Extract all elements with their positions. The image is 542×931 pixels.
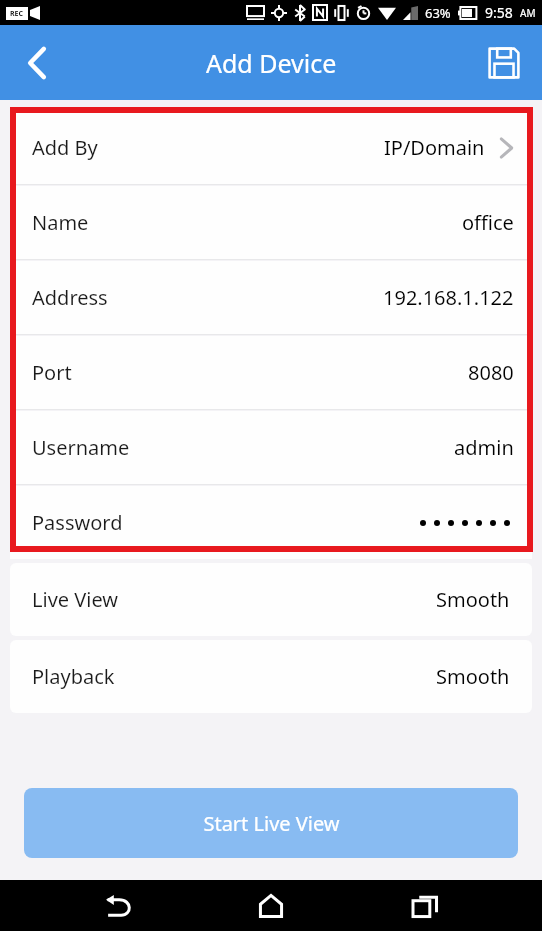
staticText: 192.168.1.122: [383, 284, 514, 311]
staticText: Address: [32, 284, 108, 311]
button[interactable]: Home: [235, 880, 307, 931]
staticText: 8080: [468, 359, 514, 386]
staticText: Name: [32, 209, 89, 236]
staticText: 63%: [425, 4, 451, 22]
staticText: Password: [32, 509, 123, 536]
staticText: admin: [454, 434, 514, 461]
button[interactable]: Add By: [10, 111, 532, 184]
button[interactable]: Username: [10, 411, 532, 484]
staticText: Live View: [32, 586, 119, 613]
staticText: Port: [32, 359, 72, 386]
staticText: Start Live View: [203, 810, 340, 837]
staticText: Smooth: [436, 663, 510, 690]
button[interactable]: Playback: [10, 640, 532, 713]
button[interactable]: Port: [10, 336, 532, 409]
staticText: REC: [10, 9, 24, 19]
button[interactable]: Live View: [10, 563, 532, 636]
staticText: Add Device: [206, 46, 337, 80]
staticText: Playback: [32, 663, 115, 690]
staticText: IP/Domain: [384, 134, 485, 161]
button[interactable]: Back: [82, 880, 154, 931]
button[interactable]: Back: [8, 34, 66, 92]
button[interactable]: Recent apps: [389, 880, 461, 931]
staticText: Smooth: [436, 586, 510, 613]
button[interactable]: Password: [10, 486, 532, 559]
staticText: Username: [32, 434, 130, 461]
button[interactable]: Address: [10, 261, 532, 334]
button[interactable]: Save: [476, 35, 532, 91]
button[interactable]: Name: [10, 186, 532, 259]
staticText: AM: [520, 6, 536, 20]
staticText: 9:58: [485, 3, 513, 22]
staticText: office: [462, 209, 514, 236]
button[interactable]: Start Live View: [24, 788, 518, 858]
staticText: Add By: [32, 134, 98, 161]
